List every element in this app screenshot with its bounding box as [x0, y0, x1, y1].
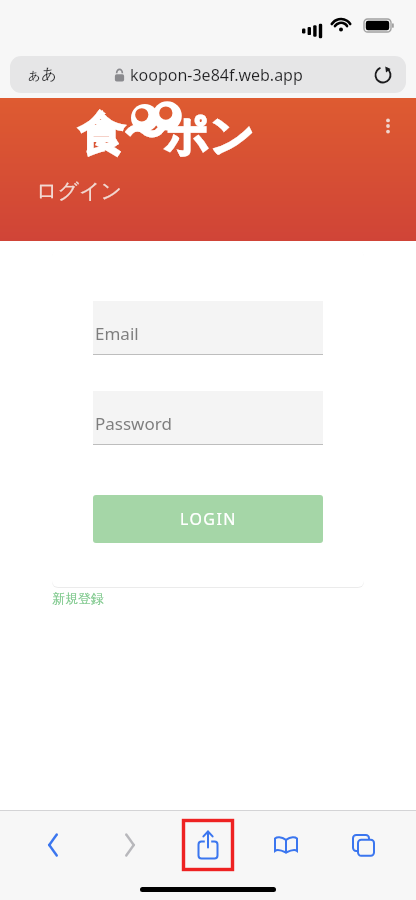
button[interactable]: Tabs: [340, 822, 386, 868]
staticText: koopon-3e84f.web.app: [130, 64, 303, 86]
button[interactable]: Reload: [372, 64, 394, 86]
staticText: ぁあ: [26, 65, 57, 84]
staticText: LOGIN: [180, 508, 237, 530]
button[interactable]: Email: [93, 301, 323, 354]
button[interactable]: More options: [368, 106, 408, 146]
staticText: 食: [78, 106, 124, 164]
staticText: Password: [95, 412, 172, 435]
staticText: 新規登録: [52, 590, 104, 606]
button[interactable]: Share: [183, 820, 233, 870]
button[interactable]: LOGIN: [93, 495, 323, 543]
button[interactable]: Back: [30, 822, 76, 868]
button[interactable]: 新規登録: [52, 587, 104, 606]
staticText: Email: [95, 322, 139, 345]
staticText: ポン: [164, 109, 255, 164]
button[interactable]: Password: [93, 391, 323, 444]
staticText: ログイン: [36, 178, 122, 204]
staticText: 〜: [124, 108, 164, 158]
button[interactable]: Forward: [107, 822, 153, 868]
button[interactable]: Bookmarks: [263, 822, 309, 868]
button[interactable]: ぁあ: [10, 56, 406, 93]
